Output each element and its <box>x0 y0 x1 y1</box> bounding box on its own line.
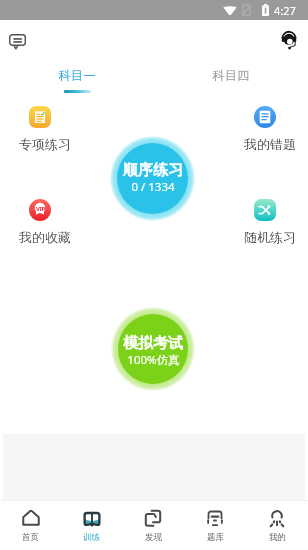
button[interactable]: 题库 <box>184 501 246 550</box>
staticText: 题库 <box>207 532 224 543</box>
staticText: 100%仿真 <box>127 352 180 368</box>
staticText: 发现 <box>145 532 162 543</box>
staticText: 随机练习 <box>244 229 296 245</box>
staticText: 训练 <box>83 532 100 543</box>
staticText: VIP <box>36 205 45 213</box>
staticText: 4:27 <box>274 3 296 18</box>
button[interactable]: 顺序练习 <box>110 136 195 221</box>
staticText: 科目一 <box>58 68 96 84</box>
staticText: 顺序练习 <box>123 161 183 180</box>
staticText: 首页 <box>22 532 39 543</box>
button[interactable]: 我的 <box>246 501 308 550</box>
button[interactable]: 随机练习 <box>231 199 308 245</box>
button[interactable]: 我的错题 <box>231 106 308 152</box>
staticText: 科目四 <box>212 68 250 84</box>
button[interactable]: VIP <box>6 199 84 245</box>
button[interactable]: Customer Service <box>278 29 300 51</box>
staticText: 我的收藏 <box>19 229 71 245</box>
button[interactable]: Messages <box>6 30 28 52</box>
staticText: 专项练习 <box>19 136 71 152</box>
button[interactable]: 模拟考试 <box>111 307 195 391</box>
button[interactable]: 科目四 <box>196 68 266 100</box>
button[interactable]: 科目一 <box>42 68 112 100</box>
staticText: 我的 <box>269 532 286 543</box>
staticText: 模拟考试 <box>123 334 183 353</box>
staticText: 0 / 1334 <box>131 179 175 195</box>
staticText: 我的错题 <box>244 136 296 152</box>
button[interactable]: 训练 <box>61 501 122 550</box>
button[interactable]: 首页 <box>0 501 61 550</box>
button[interactable]: 发现 <box>122 501 184 550</box>
button[interactable]: 专项练习 <box>6 106 84 152</box>
